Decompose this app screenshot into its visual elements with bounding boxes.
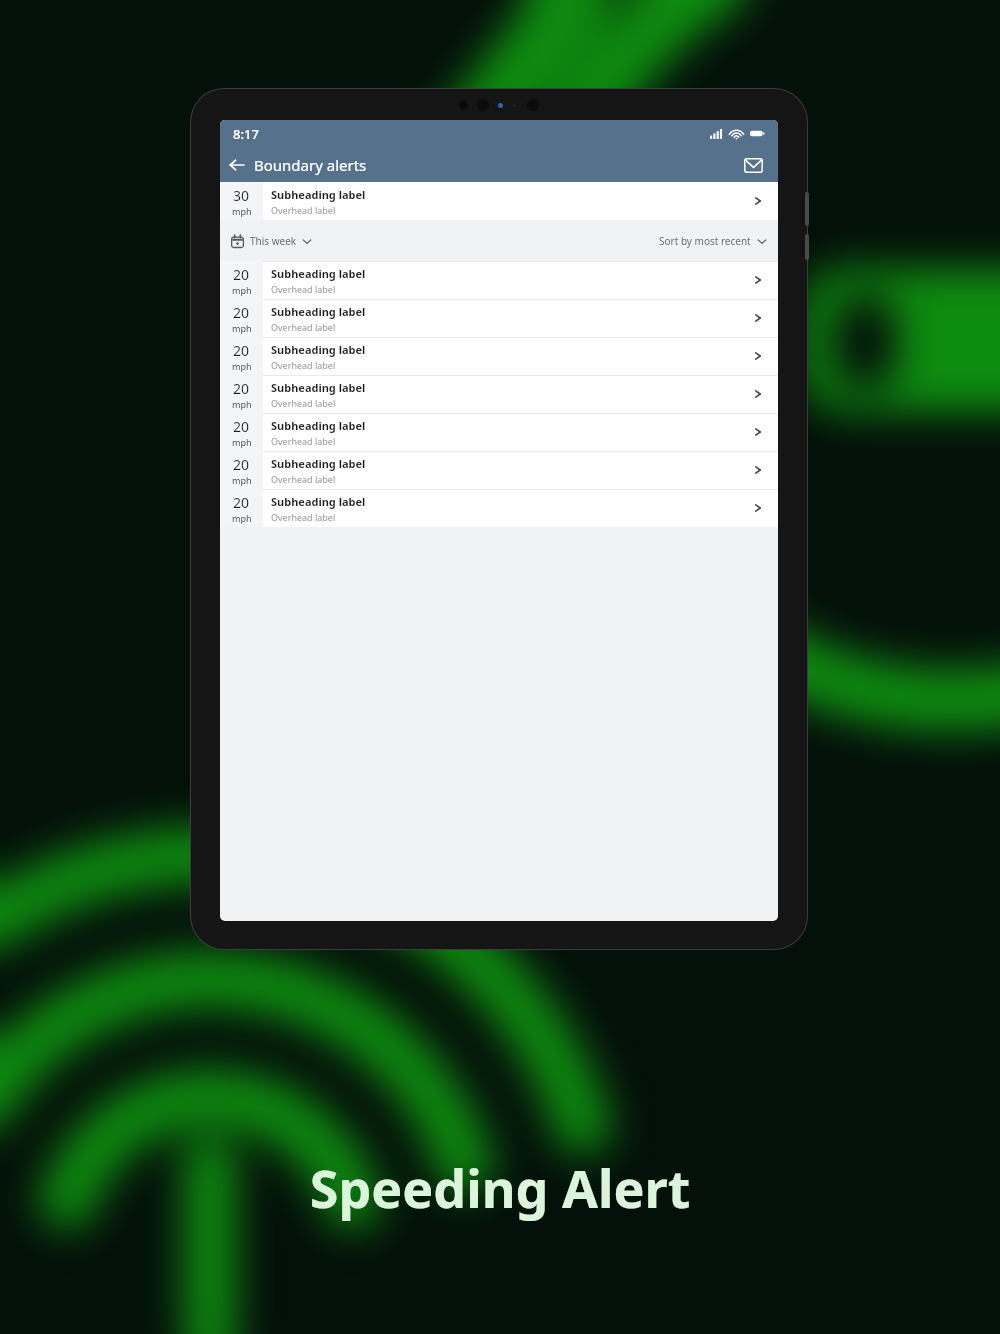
button[interactable]: 30 <box>220 182 778 220</box>
staticText: 8:17 <box>233 125 259 143</box>
button[interactable]: Back <box>220 148 254 182</box>
staticText: Overhead label <box>271 473 336 485</box>
staticText: Subheading label <box>271 494 366 509</box>
staticText: 20 <box>233 303 250 322</box>
button[interactable]: 20 <box>220 299 778 337</box>
button[interactable]: 20 <box>220 489 778 527</box>
staticText: Overhead label <box>271 435 336 447</box>
button[interactable]: 20 <box>220 337 778 375</box>
staticText: Overhead label <box>271 283 336 295</box>
staticText: Subheading label <box>271 342 366 357</box>
staticText: mph <box>232 474 252 486</box>
staticText: 20 <box>233 265 250 284</box>
staticText: mph <box>232 360 252 372</box>
staticText: mph <box>232 512 252 524</box>
staticText: Overhead label <box>271 359 336 371</box>
button[interactable]: 20 <box>220 451 778 489</box>
staticText: Overhead label <box>271 321 336 333</box>
staticText: Overhead label <box>271 511 336 523</box>
button[interactable]: Sort by most recent <box>659 234 767 248</box>
staticText: Subheading label <box>271 187 366 202</box>
staticText: 20 <box>233 417 250 436</box>
staticText: 20 <box>233 379 250 398</box>
staticText: 20 <box>233 341 250 360</box>
staticText: 30 <box>233 186 250 205</box>
button[interactable]: This week <box>231 234 312 248</box>
staticText: Subheading label <box>271 456 366 471</box>
staticText: 20 <box>233 493 250 512</box>
staticText: Overhead label <box>271 397 336 409</box>
staticText: Sort by most recent <box>659 234 751 248</box>
staticText: Subheading label <box>271 304 366 319</box>
button[interactable]: Messages <box>738 150 768 180</box>
staticText: mph <box>232 436 252 448</box>
staticText: mph <box>232 398 252 410</box>
staticText: mph <box>232 322 252 334</box>
staticText: Subheading label <box>271 266 366 281</box>
staticText: Subheading label <box>271 380 366 395</box>
staticText: This week <box>250 234 297 248</box>
button[interactable]: 20 <box>220 413 778 451</box>
button[interactable]: 20 <box>220 375 778 413</box>
staticText: Speeding Alert <box>0 1152 1000 1223</box>
staticText: mph <box>232 284 252 296</box>
staticText: Overhead label <box>271 204 336 216</box>
button[interactable]: 20 <box>220 261 778 299</box>
staticText: 20 <box>233 455 250 474</box>
staticText: Subheading label <box>271 418 366 433</box>
staticText: Boundary alerts <box>254 155 367 175</box>
staticText: mph <box>232 205 252 217</box>
